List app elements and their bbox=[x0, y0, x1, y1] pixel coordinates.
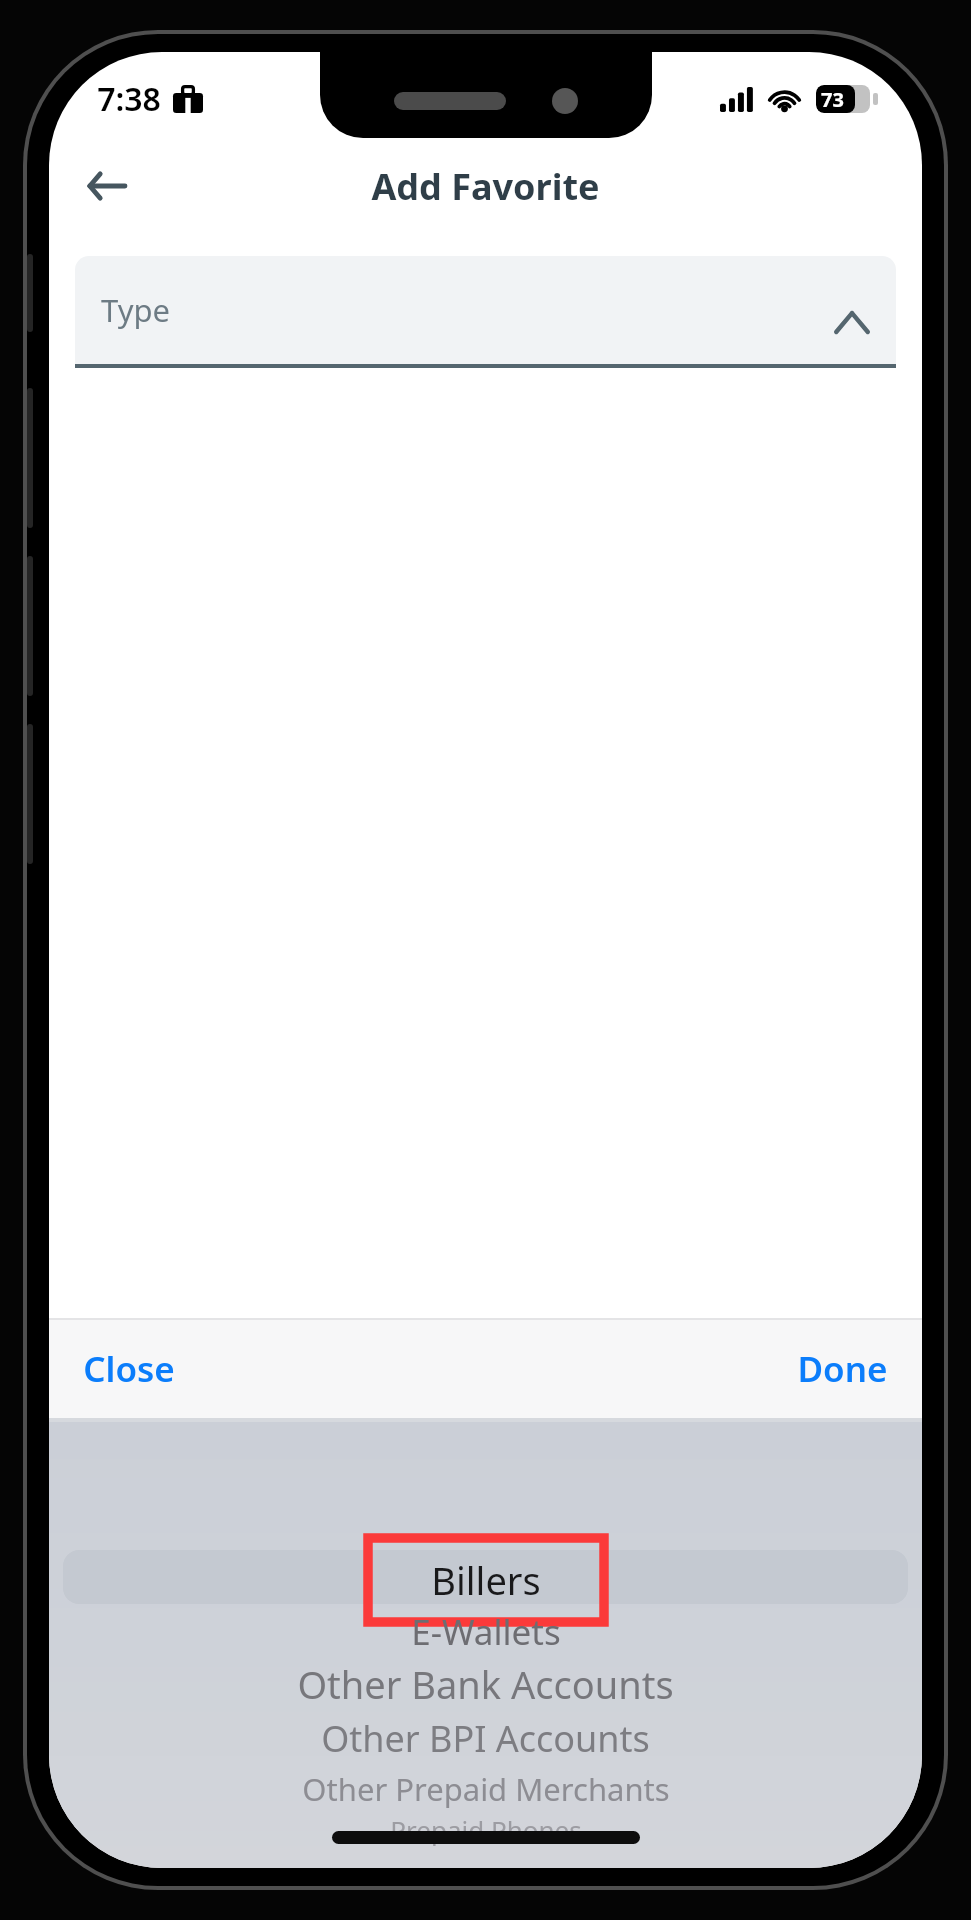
button[interactable]: Back bbox=[65, 146, 145, 226]
staticText: 73 bbox=[821, 86, 844, 113]
staticText: Done bbox=[797, 1345, 888, 1393]
staticText: Close bbox=[83, 1345, 175, 1393]
button[interactable]: Other Prepaid Merchants bbox=[302, 1768, 670, 1810]
button[interactable]: Done bbox=[763, 1320, 922, 1418]
staticText: Type bbox=[101, 289, 170, 331]
button[interactable]: E-Wallets bbox=[411, 1608, 561, 1656]
staticText: Prepaid Phones bbox=[390, 1812, 582, 1847]
staticText: Other Prepaid Merchants bbox=[302, 1768, 670, 1810]
button[interactable]: Type bbox=[75, 256, 896, 364]
staticText: 7:38 bbox=[97, 77, 161, 121]
button[interactable]: Billers bbox=[431, 1554, 541, 1606]
staticText: Other Bank Accounts bbox=[297, 1658, 674, 1710]
staticText: E-Wallets bbox=[411, 1608, 561, 1656]
staticText: Add Favorite bbox=[371, 162, 600, 211]
button[interactable]: Close bbox=[49, 1320, 209, 1418]
button[interactable]: Other BPI Accounts bbox=[321, 1714, 650, 1763]
button[interactable]: Prepaid Phones bbox=[390, 1812, 582, 1847]
staticText: Billers bbox=[431, 1554, 541, 1606]
staticText: Other BPI Accounts bbox=[321, 1714, 650, 1763]
button[interactable]: Other Bank Accounts bbox=[297, 1658, 674, 1710]
